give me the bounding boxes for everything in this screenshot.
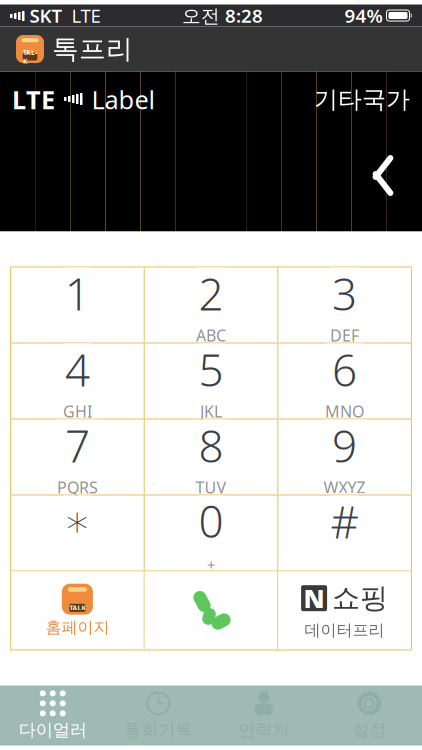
staticText: 6 bbox=[332, 340, 357, 399]
staticText: 8 bbox=[198, 416, 223, 475]
staticText bbox=[343, 553, 347, 574]
staticText: 7 bbox=[65, 416, 90, 475]
staticText: 9 bbox=[332, 416, 357, 475]
staticText: PQRS bbox=[57, 477, 98, 498]
staticText: MNO bbox=[325, 401, 364, 422]
button[interactable]: TALK bbox=[11, 571, 144, 649]
staticText: 쇼핑 bbox=[332, 581, 388, 615]
button[interactable]: 통화 bbox=[145, 571, 277, 649]
staticText bbox=[75, 325, 79, 346]
staticText: LTE bbox=[12, 83, 55, 116]
staticText: ∗ bbox=[63, 496, 91, 546]
button[interactable]: 0 bbox=[145, 495, 277, 570]
button[interactable]: 2 bbox=[145, 267, 277, 342]
staticText: LTE bbox=[71, 3, 100, 28]
button[interactable]: 5 bbox=[145, 343, 277, 418]
staticText: TALK bbox=[23, 48, 37, 66]
staticText: # bbox=[331, 492, 359, 551]
staticText: 톡프리 bbox=[52, 33, 133, 65]
button[interactable]: 4 bbox=[11, 343, 144, 418]
staticText: 오전 8:28 bbox=[182, 3, 263, 28]
staticText: 통화기록 bbox=[124, 719, 192, 741]
staticText: GHI bbox=[63, 401, 92, 422]
staticText: 연락처 bbox=[238, 719, 289, 741]
staticText: DEF bbox=[330, 325, 359, 346]
button[interactable]: 7 bbox=[11, 419, 144, 494]
staticText: TUV bbox=[195, 477, 226, 498]
button[interactable]: N bbox=[278, 571, 411, 649]
staticText: WXYZ bbox=[324, 477, 366, 498]
button[interactable]: 3 bbox=[278, 267, 411, 342]
staticText: ABC bbox=[196, 325, 226, 346]
staticText: SKT bbox=[29, 3, 62, 28]
staticText: 데이터프리 bbox=[305, 620, 385, 640]
staticText: 0 bbox=[198, 491, 223, 550]
button[interactable]: # bbox=[278, 495, 411, 570]
staticText: 설정 bbox=[352, 719, 386, 741]
staticText: + bbox=[207, 555, 215, 574]
staticText: 3 bbox=[332, 264, 357, 323]
staticText: N bbox=[304, 581, 325, 615]
staticText: 기타국가 bbox=[314, 85, 410, 114]
staticText: 1 bbox=[65, 264, 90, 323]
staticText: TALK bbox=[69, 603, 85, 612]
staticText: 홈페이지 bbox=[45, 618, 109, 637]
staticText: 94% bbox=[344, 3, 382, 28]
staticText: 5 bbox=[198, 340, 223, 399]
button[interactable]: 다이얼러 bbox=[0, 685, 105, 745]
staticText: 2 bbox=[198, 264, 223, 323]
button[interactable]: 연락처 bbox=[211, 685, 316, 745]
button[interactable]: 9 bbox=[278, 419, 411, 494]
staticText: 다이얼러 bbox=[19, 719, 87, 741]
button[interactable]: 설정 bbox=[316, 685, 422, 745]
button[interactable]: 이전 bbox=[360, 152, 422, 198]
button[interactable]: 1 bbox=[11, 267, 144, 342]
button[interactable]: 기타국가 bbox=[314, 81, 422, 118]
button[interactable]: 6 bbox=[278, 343, 411, 418]
staticText: Label bbox=[91, 83, 155, 116]
button[interactable]: ∗ bbox=[11, 495, 144, 570]
button[interactable]: 톡프리 홈 bbox=[0, 29, 52, 69]
button[interactable]: 8 bbox=[145, 419, 277, 494]
button[interactable]: 통화기록 bbox=[105, 685, 211, 745]
staticText: 4 bbox=[65, 340, 90, 399]
staticText: JKL bbox=[200, 401, 222, 422]
